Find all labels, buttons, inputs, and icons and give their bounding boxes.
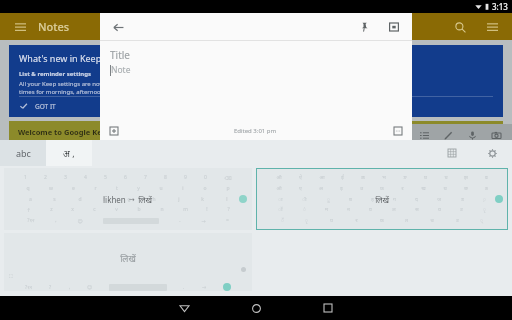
staticText: ा bbox=[278, 196, 283, 203]
staticText: → bbox=[202, 284, 207, 290]
staticText: 3 bbox=[64, 174, 67, 181]
staticText: य bbox=[438, 206, 441, 213]
staticText: Edited 3:01 pm bbox=[234, 127, 277, 135]
staticText: d bbox=[78, 196, 82, 203]
button[interactable]: New voice note bbox=[464, 127, 480, 143]
button[interactable]: Hindi keyboard bbox=[256, 168, 508, 230]
staticText: ☺ bbox=[87, 284, 93, 290]
staticText: ख bbox=[421, 185, 426, 192]
staticText: g bbox=[127, 196, 131, 203]
button[interactable]: अ , bbox=[46, 140, 92, 166]
staticText: म bbox=[325, 206, 328, 213]
staticText: m bbox=[183, 206, 188, 213]
staticText: ☺ bbox=[77, 218, 83, 224]
staticText: → bbox=[129, 196, 135, 204]
button[interactable]: What's new in Keep bbox=[19, 52, 493, 110]
staticText: इ bbox=[340, 185, 343, 192]
button[interactable]: abc bbox=[0, 140, 46, 166]
staticText: abc bbox=[16, 147, 31, 159]
staticText: Title bbox=[110, 48, 130, 62]
button[interactable]: English keyboard bbox=[4, 168, 252, 230]
button[interactable]: Back bbox=[108, 17, 128, 37]
staticText: ृ bbox=[483, 206, 486, 213]
button[interactable]: Keyboard layout bbox=[440, 141, 464, 165]
staticText: ं bbox=[303, 206, 306, 213]
staticText: GOT IT bbox=[35, 102, 56, 110]
staticText: ल bbox=[392, 206, 396, 213]
staticText: झ bbox=[464, 174, 468, 181]
staticText: ↑ bbox=[26, 207, 31, 213]
staticText: o bbox=[203, 185, 207, 192]
staticText: प bbox=[330, 217, 333, 224]
staticText: r bbox=[94, 185, 97, 192]
staticText: लिखें bbox=[375, 194, 390, 205]
button[interactable]: New photo note bbox=[488, 127, 504, 143]
button[interactable]: Handwriting keyboard bbox=[4, 233, 252, 291]
staticText: अ bbox=[319, 185, 323, 192]
staticText: z bbox=[50, 206, 53, 213]
staticText: ठ bbox=[485, 185, 488, 192]
button[interactable]: New list bbox=[416, 127, 432, 143]
staticText: ऊ bbox=[361, 174, 365, 181]
button[interactable]: GOT IT bbox=[19, 102, 56, 110]
staticText: y bbox=[137, 185, 140, 192]
staticText: ृ bbox=[305, 217, 308, 224]
staticText: ॉ bbox=[278, 206, 283, 213]
staticText: द bbox=[415, 196, 418, 203]
staticText: घ bbox=[424, 174, 427, 181]
staticText: What's new in Keep bbox=[19, 52, 102, 64]
staticText: लिखें bbox=[120, 252, 136, 264]
staticText: औ bbox=[276, 174, 282, 181]
button[interactable]: More options bbox=[391, 124, 405, 138]
staticText: e bbox=[72, 185, 75, 192]
staticText: ?१२ bbox=[25, 284, 33, 291]
staticText: w bbox=[49, 185, 53, 192]
staticText: Note bbox=[111, 64, 131, 76]
button[interactable]: New drawing bbox=[440, 127, 456, 143]
button[interactable]: Open navigation drawer bbox=[10, 17, 30, 37]
staticText: भ bbox=[382, 174, 386, 181]
button[interactable]: Archive bbox=[384, 17, 404, 37]
staticText: 3:13 bbox=[492, 1, 508, 12]
button[interactable]: Recent apps bbox=[311, 296, 345, 320]
button[interactable]: Home bbox=[239, 296, 273, 320]
staticText: ? bbox=[227, 206, 230, 213]
staticText: ट bbox=[460, 206, 463, 213]
staticText: ॅ bbox=[281, 217, 284, 224]
staticText: q bbox=[26, 185, 30, 192]
staticText: , bbox=[69, 284, 71, 291]
staticText: . bbox=[179, 217, 181, 224]
staticText: न bbox=[347, 206, 350, 213]
staticText: Notes bbox=[38, 19, 70, 34]
staticText: अ , bbox=[63, 147, 75, 159]
staticText: ह bbox=[371, 196, 374, 203]
staticText: छ bbox=[464, 185, 468, 192]
staticText: र bbox=[355, 217, 358, 224]
button[interactable]: Search bbox=[450, 17, 470, 37]
button[interactable]: View options bbox=[482, 17, 502, 37]
staticText: s bbox=[53, 196, 56, 203]
button[interactable]: Back bbox=[167, 296, 201, 320]
button[interactable]: Settings bbox=[480, 141, 504, 165]
staticText: त bbox=[405, 217, 408, 224]
staticText: All your Keep settings are now all in on… bbox=[19, 80, 282, 96]
staticText: List & reminder settings bbox=[19, 70, 91, 78]
staticText: च bbox=[430, 217, 434, 224]
staticText: = bbox=[226, 217, 229, 224]
staticText: b bbox=[137, 206, 141, 213]
staticText: a bbox=[29, 196, 32, 203]
staticText: n bbox=[160, 206, 164, 213]
staticText: 1 bbox=[24, 174, 27, 181]
staticText: u bbox=[159, 185, 163, 192]
button[interactable]: Welcome to Google Keep bbox=[18, 127, 494, 159]
staticText: ी bbox=[302, 196, 307, 203]
staticText: ू bbox=[327, 196, 330, 203]
staticText: क bbox=[380, 217, 384, 224]
button[interactable]: Pin note bbox=[354, 17, 374, 37]
staticText: ध bbox=[444, 174, 448, 181]
button[interactable]: Add bbox=[107, 124, 121, 138]
staticText: 0 bbox=[204, 174, 207, 181]
staticText: 5 bbox=[104, 174, 107, 181]
staticText: ⛶ bbox=[9, 274, 13, 279]
staticText: 6 bbox=[124, 174, 127, 181]
